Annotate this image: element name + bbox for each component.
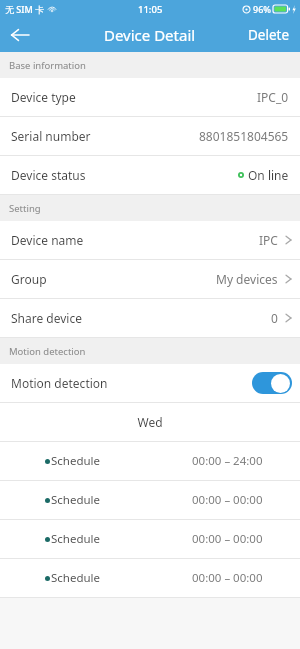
button[interactable]: Delete — [238, 20, 300, 50]
staticText: Delete — [248, 26, 290, 44]
button[interactable]: Schedule — [0, 442, 300, 480]
staticText: Wed — [137, 414, 163, 430]
staticText: Schedule — [51, 492, 101, 508]
staticText: IPC_0 — [257, 89, 289, 105]
staticText: Base information — [9, 59, 86, 72]
staticText: 96% — [253, 3, 271, 15]
staticText: On line — [248, 167, 289, 183]
staticText: 00:00 – 00:00 — [192, 492, 263, 508]
staticText: Schedule — [51, 453, 101, 469]
button[interactable]: Motion detection toggle — [252, 372, 292, 394]
button[interactable]: Share device — [0, 299, 300, 337]
staticText: Serial number — [11, 128, 91, 144]
staticText: Group — [11, 271, 47, 287]
staticText: 8801851804565 — [199, 128, 289, 144]
button[interactable]: Schedule — [0, 520, 300, 558]
staticText: IPC — [259, 232, 278, 248]
staticText: Device type — [11, 89, 76, 105]
staticText: Device name — [11, 232, 84, 248]
staticText: Setting — [9, 202, 41, 215]
staticText: Share device — [11, 310, 82, 326]
staticText: 00:00 – 00:00 — [192, 531, 263, 547]
button[interactable]: Schedule — [0, 481, 300, 519]
button[interactable]: Schedule — [0, 559, 300, 597]
staticText: Device status — [11, 167, 86, 183]
button[interactable]: Group — [0, 260, 300, 298]
staticText: 无 SIM 卡 — [5, 3, 45, 15]
button[interactable]: Device name — [0, 221, 300, 259]
staticText: Motion detection — [9, 345, 86, 358]
staticText: 11:05 — [138, 3, 163, 16]
staticText: Schedule — [51, 531, 101, 547]
staticText: 00:00 – 00:00 — [192, 570, 263, 586]
staticText: Device Detail — [104, 25, 196, 45]
staticText: 0 — [271, 310, 278, 326]
staticText: Motion detection — [11, 375, 108, 391]
staticText: My devices — [216, 271, 278, 287]
button[interactable]: Back — [0, 18, 40, 52]
staticText: Schedule — [51, 570, 101, 586]
staticText: 00:00 – 24:00 — [192, 453, 263, 469]
